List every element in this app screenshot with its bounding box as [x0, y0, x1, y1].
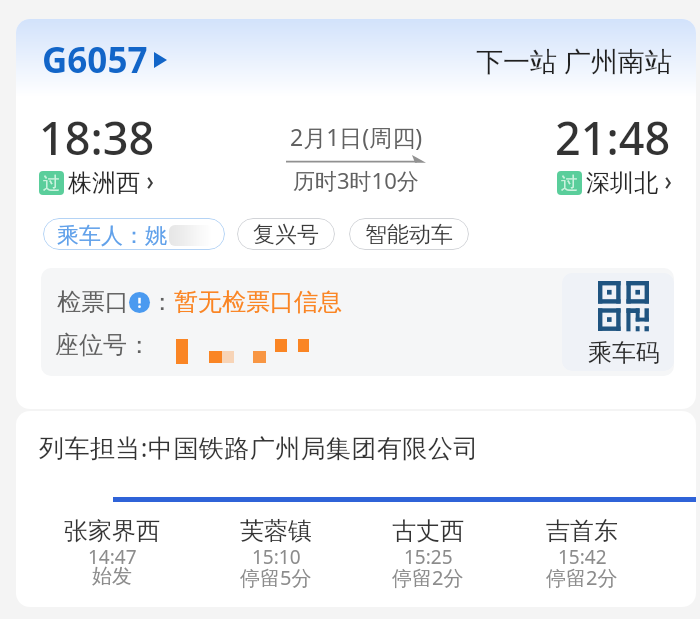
- staticText: 14:47: [88, 544, 137, 570]
- staticText: 深圳北: [586, 168, 658, 198]
- button[interactable]: 芙蓉镇: [216, 516, 336, 607]
- button[interactable]: 乘车码: [562, 273, 674, 371]
- button[interactable]: 吉首东: [522, 516, 642, 607]
- staticText: 15:10: [252, 544, 301, 570]
- button[interactable]: 过: [39, 168, 153, 198]
- staticText: 暂无检票口信息: [174, 287, 342, 317]
- button[interactable]: 下一站 广州南站: [476, 42, 673, 79]
- button[interactable]: 张家界西: [52, 516, 172, 607]
- staticText: 停留2分: [392, 564, 464, 591]
- staticText: 检票口: [57, 287, 129, 317]
- staticText: 停留5分: [240, 564, 312, 591]
- button[interactable]: G6057: [42, 36, 167, 84]
- staticText: 吉首东: [546, 516, 618, 546]
- staticText: ：: [150, 287, 174, 317]
- staticText: 智能动车: [365, 221, 453, 249]
- staticText: 始发: [92, 564, 132, 589]
- staticText: 芙蓉镇: [240, 516, 312, 546]
- button[interactable]: Gate info: [129, 292, 150, 313]
- button[interactable]: 复兴号: [237, 218, 335, 250]
- staticText: 古丈西: [392, 516, 464, 546]
- staticText: 复兴号: [253, 221, 319, 249]
- staticText: 停留2分: [546, 564, 618, 591]
- staticText: 过: [43, 173, 60, 194]
- staticText: 座位号：: [55, 330, 151, 360]
- button[interactable]: 智能动车: [349, 218, 469, 250]
- button[interactable]: 乘车人：姚: [43, 218, 225, 250]
- staticText: 乘车码: [588, 338, 660, 368]
- staticText: 下一站 广州南站: [476, 42, 673, 79]
- staticText: 15:42: [558, 544, 607, 570]
- staticText: 21:48: [555, 107, 671, 168]
- staticText: 过: [561, 173, 578, 194]
- staticText: 株洲西: [68, 168, 140, 198]
- staticText: 15:25: [404, 544, 453, 570]
- staticText: 18:38: [39, 107, 155, 168]
- staticText: 历时3时10分: [293, 165, 419, 195]
- staticText: 列车担当:中国铁路广州局集团有限公司: [39, 430, 479, 464]
- staticText: 乘车人：姚: [57, 222, 167, 250]
- button[interactable]: 过: [557, 168, 671, 198]
- staticText: 2月1日(周四): [290, 121, 423, 152]
- staticText: G6057: [42, 36, 148, 84]
- button[interactable]: 古丈西: [368, 516, 488, 607]
- staticText: 张家界西: [64, 516, 160, 546]
